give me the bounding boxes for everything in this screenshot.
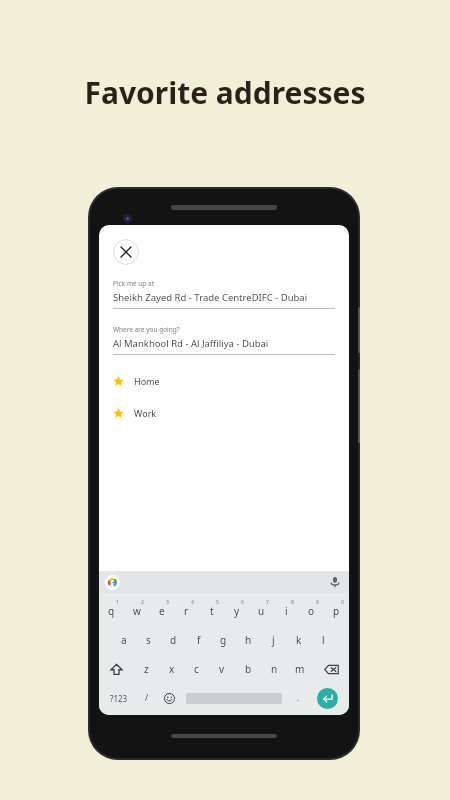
staticText: z: [144, 662, 149, 676]
button[interactable]: t: [199, 598, 224, 624]
button[interactable]: a: [111, 627, 136, 653]
staticText: x: [169, 662, 175, 676]
button[interactable]: s: [136, 627, 161, 653]
button[interactable]: q: [99, 598, 124, 624]
button[interactable]: p: [324, 598, 349, 624]
button[interactable]: m: [287, 656, 313, 682]
staticText: Sheikh Zayed Rd - Trade CentreDIFC - Dub…: [113, 291, 308, 304]
staticText: i: [285, 604, 288, 618]
staticText: g: [220, 633, 227, 647]
button[interactable]: j: [261, 627, 286, 653]
staticText: m: [295, 662, 305, 676]
staticText: e: [159, 604, 165, 618]
staticText: j: [272, 633, 275, 647]
button[interactable]: g: [211, 627, 236, 653]
button[interactable]: i: [274, 598, 299, 624]
button[interactable]: Pick me up at: [113, 279, 335, 309]
button[interactable]: Home: [113, 375, 335, 387]
staticText: b: [245, 662, 252, 676]
staticText: u: [258, 604, 265, 618]
staticText: 6: [241, 599, 244, 606]
staticText: q: [108, 604, 115, 618]
button[interactable]: e: [149, 598, 174, 624]
staticText: n: [271, 662, 278, 676]
staticText: h: [245, 633, 252, 647]
staticText: ?123: [110, 693, 128, 704]
staticText: y: [234, 604, 240, 618]
button[interactable]: Work: [113, 407, 335, 419]
staticText: Al Mankhool Rd - Al Jaffiliya - Dubai: [113, 337, 269, 350]
staticText: r: [184, 604, 189, 618]
staticText: 4: [191, 599, 194, 606]
button[interactable]: .: [287, 685, 310, 711]
staticText: 9: [316, 599, 319, 606]
button[interactable]: ?123: [103, 685, 135, 711]
staticText: l: [322, 633, 325, 647]
button[interactable]: Google: [105, 575, 120, 590]
staticText: d: [170, 633, 177, 647]
button[interactable]: Shift: [99, 656, 134, 682]
staticText: 2: [141, 599, 144, 606]
staticText: Work: [134, 407, 157, 419]
staticText: f: [197, 633, 201, 647]
button[interactable]: h: [236, 627, 261, 653]
button[interactable]: z: [134, 656, 159, 682]
button[interactable]: v: [209, 656, 235, 682]
button[interactable]: d: [161, 627, 186, 653]
staticText: k: [296, 633, 302, 647]
staticText: .: [297, 692, 300, 704]
staticText: 8: [291, 599, 294, 606]
staticText: t: [210, 604, 214, 618]
button[interactable]: n: [261, 656, 287, 682]
button[interactable]: l: [311, 627, 336, 653]
staticText: o: [308, 604, 315, 618]
staticText: 0: [341, 599, 344, 606]
button[interactable]: w: [124, 598, 149, 624]
button[interactable]: Where are you going?: [113, 325, 335, 355]
staticText: /: [145, 692, 149, 704]
button[interactable]: /: [135, 685, 158, 711]
button[interactable]: b: [235, 656, 261, 682]
button[interactable]: x: [159, 656, 184, 682]
button[interactable]: c: [184, 656, 209, 682]
button[interactable]: y: [224, 598, 249, 624]
button[interactable]: Backspace: [313, 656, 349, 682]
button[interactable]: o: [299, 598, 324, 624]
button[interactable]: Enter: [310, 685, 345, 711]
staticText: 3: [166, 599, 169, 606]
staticText: 7: [266, 599, 269, 606]
staticText: 5: [216, 599, 219, 606]
staticText: Favorite addresses: [0, 72, 450, 113]
button[interactable]: u: [249, 598, 274, 624]
button[interactable]: k: [286, 627, 311, 653]
button[interactable]: Emoji: [158, 685, 181, 711]
staticText: 1: [116, 599, 119, 606]
staticText: w: [133, 604, 141, 618]
staticText: s: [146, 633, 151, 647]
staticText: Home: [134, 375, 160, 387]
button[interactable]: r: [174, 598, 199, 624]
staticText: Pick me up at: [113, 279, 155, 288]
staticText: v: [219, 662, 225, 676]
button[interactable]: Close: [113, 239, 139, 265]
button[interactable]: f: [186, 627, 211, 653]
button[interactable]: Voice input: [329, 576, 341, 588]
staticText: Where are you going?: [113, 325, 180, 334]
staticText: c: [194, 662, 199, 676]
staticText: a: [121, 633, 127, 647]
staticText: p: [333, 604, 340, 618]
